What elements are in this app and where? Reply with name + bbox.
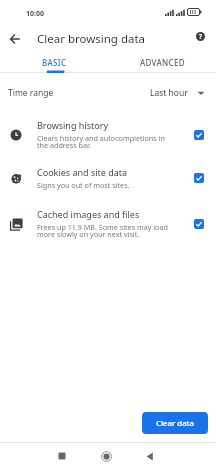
button[interactable]: Cached images and files bbox=[0, 198, 216, 250]
button[interactable] bbox=[51, 445, 73, 467]
staticText: 10:00 bbox=[26, 9, 44, 19]
button[interactable] bbox=[194, 130, 204, 140]
button[interactable] bbox=[5, 29, 25, 49]
button[interactable]: Cookies and site data bbox=[0, 158, 216, 198]
staticText: Clears history and autocompletions in th… bbox=[37, 133, 176, 151]
staticText: Frees up 11.9 MB. Some sites may load mo… bbox=[37, 222, 176, 240]
staticText: Clear browsing data bbox=[37, 31, 146, 47]
staticText: Browsing history bbox=[37, 119, 108, 131]
staticText: ? bbox=[199, 32, 203, 41]
staticText: Signs you out of most sites. bbox=[37, 180, 130, 190]
staticText: Cookies and site data bbox=[37, 166, 128, 178]
button[interactable] bbox=[139, 445, 161, 467]
button[interactable] bbox=[194, 219, 204, 229]
button[interactable]: ? bbox=[196, 32, 205, 41]
button[interactable]: Time range bbox=[0, 73, 216, 112]
staticText: BASIC bbox=[42, 57, 67, 68]
button[interactable] bbox=[95, 445, 117, 467]
button[interactable] bbox=[194, 173, 204, 183]
button[interactable]: ADVANCED bbox=[108, 52, 216, 73]
staticText: ADVANCED bbox=[140, 57, 185, 68]
button[interactable]: BASIC bbox=[0, 52, 108, 73]
button[interactable]: Browsing history bbox=[0, 112, 216, 158]
button[interactable]: Clear data bbox=[142, 412, 208, 434]
staticText: Last hour bbox=[150, 87, 188, 99]
staticText: Cached images and files bbox=[37, 208, 140, 220]
staticText: Time range bbox=[8, 87, 54, 99]
staticText: Clear data bbox=[156, 418, 195, 429]
